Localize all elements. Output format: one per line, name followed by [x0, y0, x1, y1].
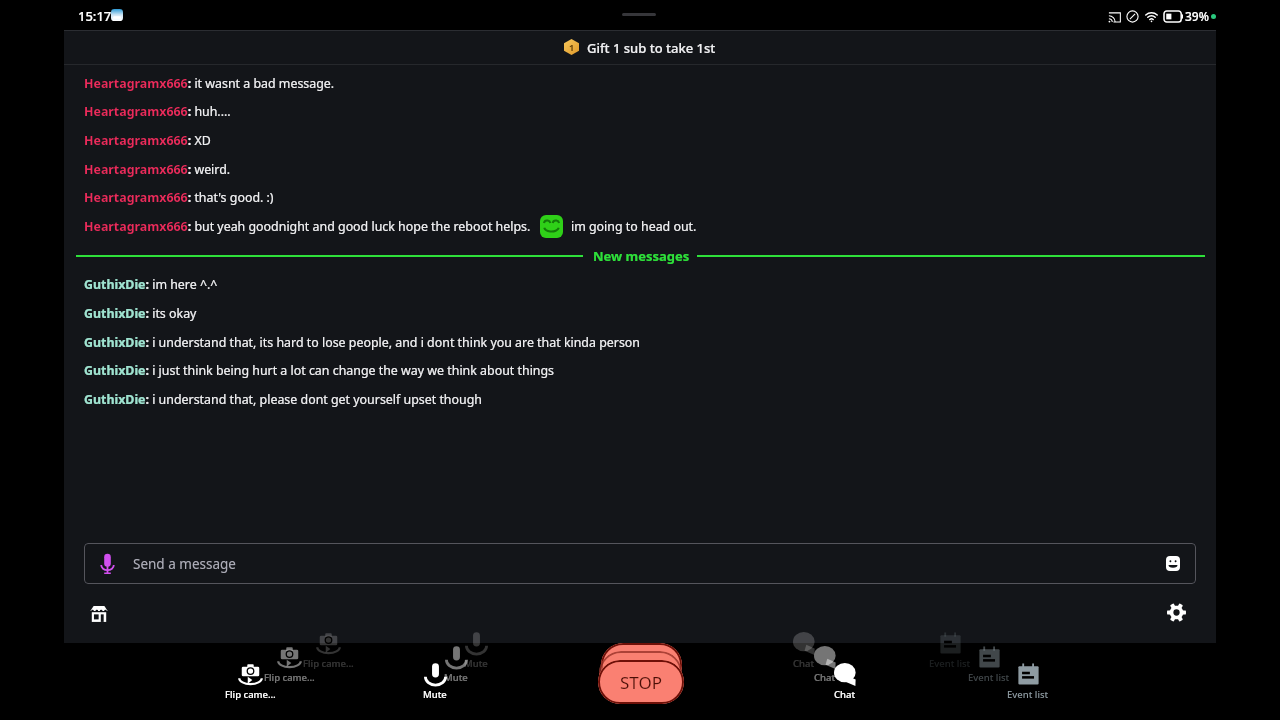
button[interactable]: Settings [1160, 596, 1193, 629]
button[interactable]: STOP [601, 643, 682, 687]
staticText: STOP [620, 671, 663, 694]
staticText: Chat [814, 671, 836, 684]
staticText: Flip came… [225, 688, 276, 701]
staticText: GuthixDie: i understand that, please don… [84, 391, 482, 408]
button[interactable]: 1 [64, 30, 1216, 65]
button[interactable]: Send a message [84, 543, 1196, 584]
staticText: Mute [423, 688, 447, 701]
staticText: 15:17 [78, 7, 112, 25]
staticText: Event list [929, 657, 971, 670]
button[interactable]: Heartagramx666: but yeah goodnight and g… [84, 212, 1236, 241]
staticText: Flip came… [264, 671, 315, 684]
staticText: im going to head out. [571, 218, 697, 235]
staticText: GuthixDie: i just think being hurt a lot… [84, 362, 555, 379]
staticText: 39% [1185, 8, 1209, 24]
staticText: Chat [834, 688, 856, 701]
staticText: Event list [1007, 688, 1049, 701]
button[interactable]: Heartagramx666: that's good. :) [84, 183, 1236, 212]
button[interactable]: Chat [785, 663, 905, 703]
staticText: STOP [620, 654, 663, 677]
button[interactable]: STOP [598, 660, 684, 704]
button[interactable]: GuthixDie: i just think being hurt a lot… [84, 356, 1236, 385]
staticText: GuthixDie: i understand that, its hard t… [84, 334, 640, 351]
staticText: Heartagramx666: it wasnt a bad message. [84, 75, 335, 92]
staticText: Heartagramx666: but yeah goodnight and g… [84, 218, 531, 235]
staticText: Send a message [133, 555, 236, 573]
button[interactable]: Heartagramx666: huh.... [84, 97, 1236, 126]
staticText: Heartagramx666: that's good. :) [84, 189, 274, 206]
staticText: Heartagramx666: huh.... [84, 103, 231, 120]
button[interactable]: Mute [375, 663, 495, 703]
staticText: Heartagramx666: weird. [84, 161, 231, 178]
button[interactable]: Heartagramx666: XD [84, 126, 1236, 155]
button[interactable]: Heartagramx666: it wasnt a bad message. [84, 69, 1236, 98]
button[interactable]: GuthixDie: i understand that, its hard t… [84, 328, 1236, 357]
staticText: 1 [569, 41, 575, 53]
staticText: Gift 1 sub to take 1st [587, 39, 716, 57]
button[interactable]: Event list [968, 663, 1088, 703]
button[interactable]: Store [82, 597, 115, 630]
button[interactable]: Heartagramx666: weird. [84, 155, 1236, 184]
staticText: Flip came… [303, 657, 354, 670]
staticText: GuthixDie: its okay [84, 305, 197, 322]
button[interactable]: GuthixDie: its okay [84, 299, 1236, 328]
staticText: GuthixDie: im here ^.^ [84, 276, 218, 293]
button[interactable]: Flip came… [190, 663, 310, 703]
button[interactable]: GuthixDie: im here ^.^ [84, 270, 1236, 299]
staticText: New messages [593, 247, 690, 265]
staticText: Mute [444, 671, 468, 684]
button[interactable]: GuthixDie: i understand that, please don… [84, 385, 1236, 414]
staticText: Heartagramx666: XD [84, 132, 211, 149]
staticText: Mute [464, 657, 488, 670]
staticText: Event list [968, 671, 1010, 684]
staticText: Chat [793, 657, 815, 670]
